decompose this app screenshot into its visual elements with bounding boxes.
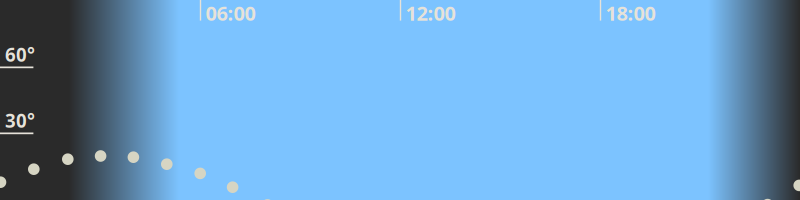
staticText: 06:00 bbox=[205, 0, 255, 26]
staticText: 60° bbox=[5, 42, 35, 67]
staticText: 30° bbox=[5, 108, 35, 133]
staticText: 18:00 bbox=[605, 0, 655, 26]
staticText: 12:00 bbox=[405, 0, 455, 26]
